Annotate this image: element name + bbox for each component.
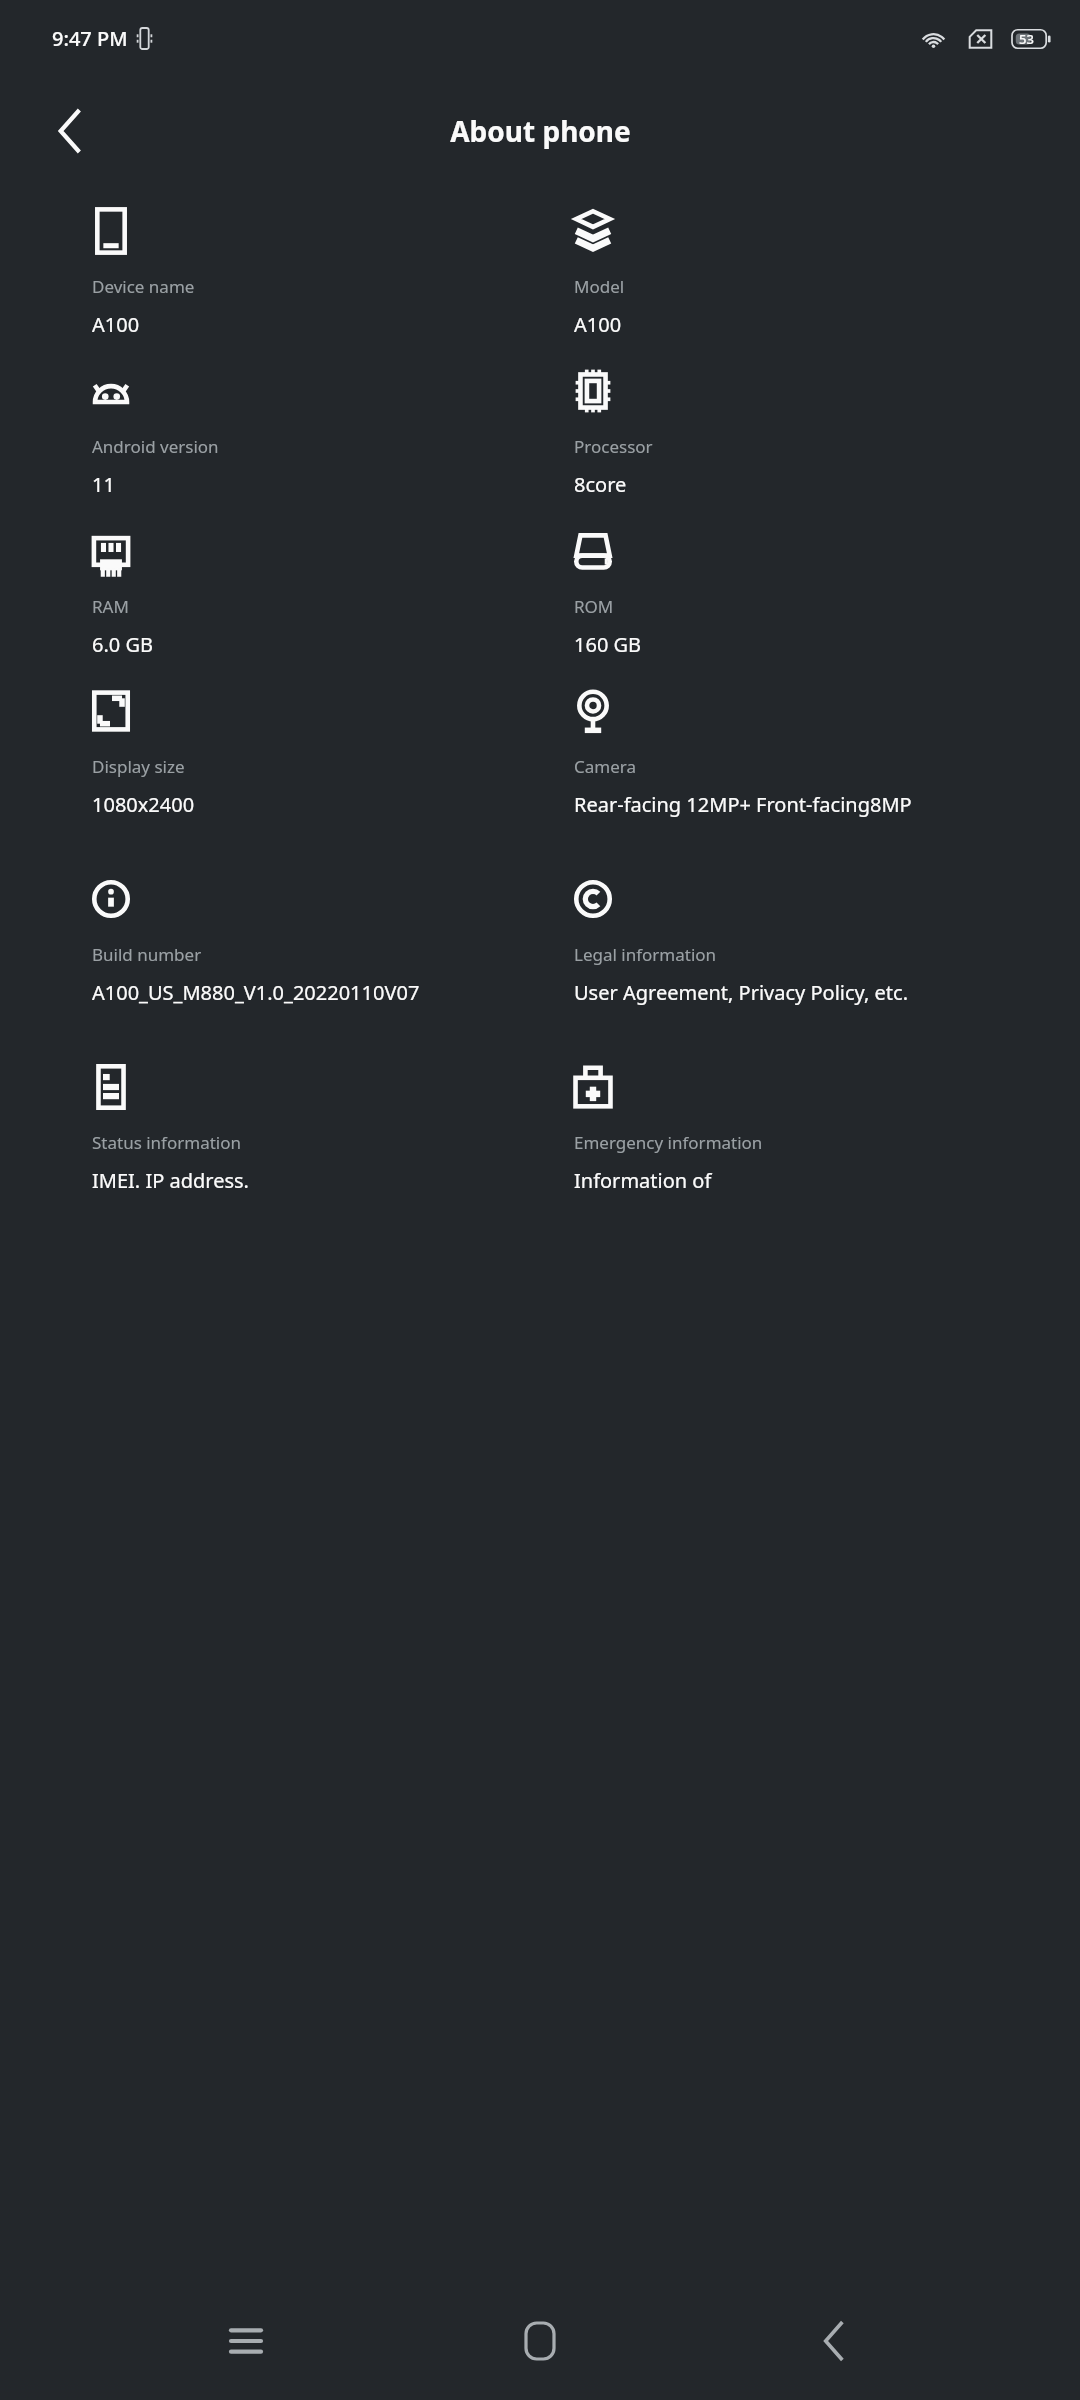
staticText: Status information bbox=[92, 1131, 242, 1154]
button[interactable]: Back bbox=[786, 2293, 882, 2389]
button[interactable]: RAM bbox=[92, 528, 564, 658]
button[interactable]: Recents bbox=[198, 2293, 294, 2389]
staticText: Build number bbox=[92, 943, 202, 966]
staticText: Model bbox=[574, 275, 625, 298]
staticText: 160 GB bbox=[574, 631, 642, 658]
staticText: Information of bbox=[574, 1167, 712, 1194]
staticText: About phone bbox=[450, 112, 631, 150]
button[interactable]: Back bbox=[38, 99, 102, 163]
staticText: Legal information bbox=[574, 943, 717, 966]
button[interactable]: Camera bbox=[574, 688, 1050, 818]
button[interactable]: Legal information bbox=[574, 876, 1050, 1006]
staticText: Rear-facing 12MP+ Front-facing8MP bbox=[574, 791, 912, 818]
staticText: A100 bbox=[92, 311, 140, 338]
staticText: 8core bbox=[574, 471, 627, 498]
staticText: IMEI. IP address. bbox=[92, 1167, 249, 1194]
staticText: 1080x2400 bbox=[92, 791, 195, 818]
staticText: User Agreement, Privacy Policy, etc. bbox=[574, 979, 908, 1006]
staticText: Emergency information bbox=[574, 1131, 763, 1154]
staticText: 53 bbox=[1019, 30, 1034, 48]
button[interactable]: Emergency information bbox=[574, 1064, 1050, 1194]
staticText: Processor bbox=[574, 435, 653, 458]
button[interactable]: Device name bbox=[92, 208, 564, 338]
staticText: 9:47 PM bbox=[52, 25, 128, 52]
staticText: A100_US_M880_V1.0_20220110V07 bbox=[92, 979, 420, 1006]
button[interactable]: Status information bbox=[92, 1064, 564, 1194]
button[interactable]: Home bbox=[492, 2293, 588, 2389]
button[interactable]: Android version bbox=[92, 368, 564, 498]
staticText: Display size bbox=[92, 755, 185, 778]
button[interactable]: Build number bbox=[92, 876, 564, 1006]
button[interactable]: Model bbox=[574, 208, 1050, 338]
staticText: 6.0 GB bbox=[92, 631, 153, 658]
staticText: A100 bbox=[574, 311, 622, 338]
button[interactable]: Display size bbox=[92, 688, 564, 818]
staticText: Camera bbox=[574, 755, 636, 778]
staticText: Device name bbox=[92, 275, 195, 298]
button[interactable]: Processor bbox=[574, 368, 1050, 498]
staticText: Android version bbox=[92, 435, 219, 458]
button[interactable]: ROM bbox=[574, 528, 1050, 658]
staticText: ROM bbox=[574, 595, 614, 618]
staticText: 11 bbox=[92, 471, 115, 498]
staticText: RAM bbox=[92, 595, 129, 618]
